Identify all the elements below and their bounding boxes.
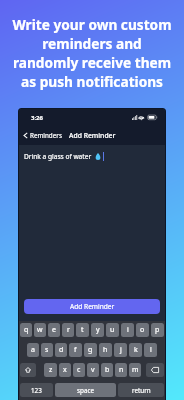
staticText: j: [120, 345, 122, 355]
button[interactable]: r: [62, 323, 74, 337]
button[interactable]: n: [115, 363, 127, 377]
staticText: b: [105, 365, 110, 375]
button[interactable]: x: [59, 363, 71, 377]
button[interactable]: a: [27, 343, 39, 357]
staticText: o: [140, 325, 145, 335]
button[interactable]: 123: [20, 383, 53, 397]
staticText: d: [59, 345, 64, 355]
staticText: i: [127, 325, 129, 335]
button[interactable]: z: [44, 363, 57, 377]
button[interactable]: Shift: [20, 363, 36, 377]
button[interactable]: v: [87, 363, 99, 377]
staticText: 3:26: [31, 114, 43, 122]
button[interactable]: c: [73, 363, 85, 377]
button[interactable]: q: [20, 323, 32, 337]
staticText: v: [91, 365, 95, 375]
staticText: s: [45, 345, 49, 355]
staticText: p: [155, 325, 160, 335]
staticText: c: [77, 365, 81, 375]
staticText: return: [132, 386, 151, 395]
button[interactable]: j: [114, 343, 127, 357]
staticText: t: [81, 325, 84, 335]
button[interactable]: s: [41, 343, 53, 357]
button[interactable]: Add Reminder: [24, 299, 160, 314]
staticText: Drink a glass of water: [24, 152, 92, 161]
button[interactable]: d: [55, 343, 67, 357]
staticText: e: [52, 325, 56, 335]
button[interactable]: return: [118, 383, 164, 397]
staticText: space: [77, 386, 94, 395]
button[interactable]: m: [129, 363, 141, 377]
button[interactable]: e: [48, 323, 60, 337]
button[interactable]: l: [144, 343, 157, 357]
staticText: h: [103, 345, 108, 355]
staticText: y: [96, 325, 100, 335]
button[interactable]: f: [69, 343, 82, 357]
staticText: a: [31, 345, 35, 355]
staticText: Write your own custom reminders and rand…: [0, 15, 184, 91]
button[interactable]: t: [76, 323, 89, 337]
staticText: m: [132, 365, 139, 375]
button[interactable]: g: [84, 343, 97, 357]
staticText: u: [110, 325, 115, 335]
staticText: z: [49, 365, 53, 375]
button[interactable]: Backspace: [146, 363, 164, 377]
button[interactable]: i: [121, 323, 134, 337]
staticText: g: [88, 345, 93, 355]
staticText: l: [150, 345, 152, 355]
staticText: x: [63, 365, 67, 375]
button[interactable]: space: [55, 383, 116, 397]
button[interactable]: Drink a glass of water: [19, 145, 165, 168]
staticText: Add Reminder: [70, 302, 115, 311]
button[interactable]: o: [136, 323, 149, 337]
staticText: Reminders: [30, 131, 62, 140]
button[interactable]: k: [129, 343, 142, 357]
button[interactable]: w: [34, 323, 46, 337]
staticText: n: [119, 365, 124, 375]
staticText: f: [74, 345, 77, 355]
staticText: q: [24, 325, 29, 335]
button[interactable]: p: [151, 323, 164, 337]
button[interactable]: Reminders: [23, 126, 62, 145]
button[interactable]: h: [99, 343, 112, 357]
staticText: r: [67, 325, 70, 335]
staticText: Add Reminder: [69, 131, 116, 140]
staticText: k: [134, 345, 138, 355]
button[interactable]: u: [106, 323, 119, 337]
button[interactable]: y: [91, 323, 104, 337]
button[interactable]: b: [101, 363, 113, 377]
staticText: 123: [31, 386, 42, 395]
staticText: w: [37, 325, 43, 335]
